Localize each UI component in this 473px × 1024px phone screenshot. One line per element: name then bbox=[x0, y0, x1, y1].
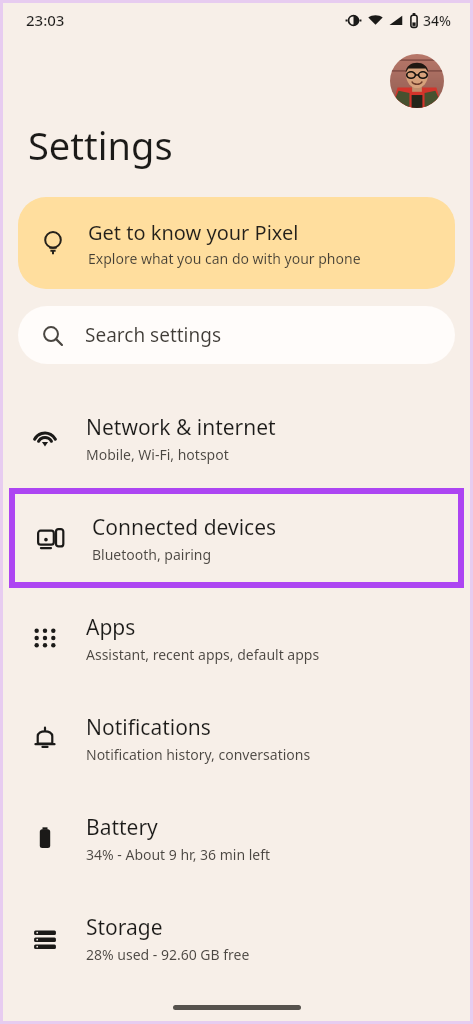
staticText: Mobile, Wi-Fi, hotspot bbox=[86, 445, 229, 464]
staticText: Assistant, recent apps, default apps bbox=[86, 645, 320, 664]
staticText: 34% - About 9 hr, 36 min left bbox=[86, 845, 271, 864]
button[interactable]: Connected devices bbox=[9, 488, 464, 588]
button[interactable]: Search settings bbox=[18, 306, 455, 364]
button[interactable]: Notifications bbox=[0, 688, 473, 788]
staticText: 23:03 bbox=[26, 10, 65, 30]
staticText: Explore what you can do with your phone bbox=[88, 249, 361, 268]
staticText: Battery bbox=[86, 813, 158, 842]
button[interactable]: Storage bbox=[0, 888, 473, 988]
staticText: Search settings bbox=[85, 322, 222, 348]
button[interactable]: Apps bbox=[0, 588, 473, 688]
staticText: Notifications bbox=[86, 713, 211, 742]
button[interactable]: Account bbox=[390, 54, 444, 108]
staticText: Settings bbox=[28, 119, 173, 171]
staticText: Notification history, conversations bbox=[86, 745, 311, 764]
staticText: Get to know your Pixel bbox=[88, 219, 299, 246]
button[interactable]: Network & internet bbox=[0, 388, 473, 488]
staticText: Connected devices bbox=[92, 513, 277, 542]
staticText: Bluetooth, pairing bbox=[92, 545, 212, 564]
staticText: Storage bbox=[86, 913, 163, 942]
button[interactable]: Get to know your Pixel bbox=[18, 197, 455, 289]
staticText: 34% bbox=[423, 11, 451, 30]
button[interactable]: Battery bbox=[0, 788, 473, 888]
staticText: Network & internet bbox=[86, 413, 276, 442]
staticText: Apps bbox=[86, 613, 136, 642]
staticText: 28% used - 92.60 GB free bbox=[86, 945, 250, 964]
